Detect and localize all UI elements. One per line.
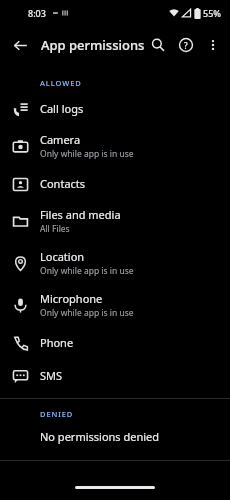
staticText: App permissions: [41, 36, 145, 54]
staticText: Only while app is in use: [40, 307, 134, 319]
button[interactable]: More options: [200, 32, 226, 58]
staticText: All Files: [40, 223, 70, 235]
button[interactable]: Back: [6, 31, 34, 59]
button[interactable]: Camera: [0, 125, 230, 167]
button[interactable]: Phone: [0, 326, 230, 359]
staticText: DENIED: [40, 409, 74, 419]
button[interactable]: Microphone: [0, 284, 230, 326]
button[interactable]: Location: [0, 242, 230, 284]
staticText: Phone: [40, 335, 74, 350]
staticText: ALLOWED: [40, 78, 82, 88]
button[interactable]: SMS: [0, 359, 230, 392]
staticText: Only while app is in use: [40, 265, 134, 277]
button[interactable]: Search: [144, 31, 172, 59]
staticText: Contacts: [40, 176, 86, 191]
staticText: SMS: [40, 368, 63, 383]
staticText: Call logs: [40, 101, 84, 116]
staticText: Location: [40, 249, 85, 264]
staticText: Camera: [40, 132, 81, 147]
staticText: ?: [184, 40, 188, 51]
button[interactable]: No permissions denied: [0, 423, 230, 458]
button[interactable]: Help: [172, 31, 200, 59]
button[interactable]: Call logs: [0, 92, 230, 125]
staticText: Files and media: [40, 207, 121, 222]
staticText: 55%: [203, 7, 221, 19]
staticText: No permissions denied: [40, 429, 160, 444]
button[interactable]: Files and media: [0, 200, 230, 242]
staticText: Only while app is in use: [40, 148, 134, 160]
staticText: 8:03: [28, 7, 46, 19]
staticText: Microphone: [40, 291, 103, 306]
button[interactable]: Contacts: [0, 167, 230, 200]
